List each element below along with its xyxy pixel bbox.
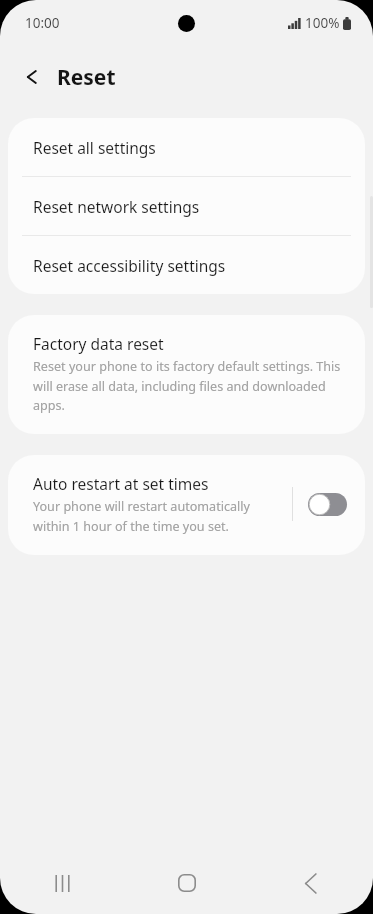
button[interactable]: Auto restart at set times, off [301,486,353,522]
staticText: Reset all settings [33,137,156,158]
button[interactable]: Reset all settings [8,118,365,176]
staticText: Factory data reset [33,333,164,354]
button[interactable]: Reset accessibility settings [8,236,365,294]
staticText: 10:00 [25,14,60,32]
button[interactable]: Reset network settings [8,177,365,235]
button[interactable]: Home [125,852,249,914]
staticText: 100% [305,14,340,32]
staticText: Reset accessibility settings [33,255,226,276]
button[interactable]: Back [12,56,54,98]
staticText: Reset network settings [33,196,200,217]
button[interactable]: Recent apps [0,852,125,914]
button[interactable]: Auto restart at set times [8,455,365,555]
button[interactable]: Factory data reset [8,315,365,434]
staticText: Auto restart at set times [33,473,209,494]
button[interactable]: Back [249,852,373,914]
staticText: Reset your phone to its factory default … [33,358,341,414]
staticText: Reset [57,63,116,92]
staticText: Your phone will restart automatically wi… [33,498,284,535]
